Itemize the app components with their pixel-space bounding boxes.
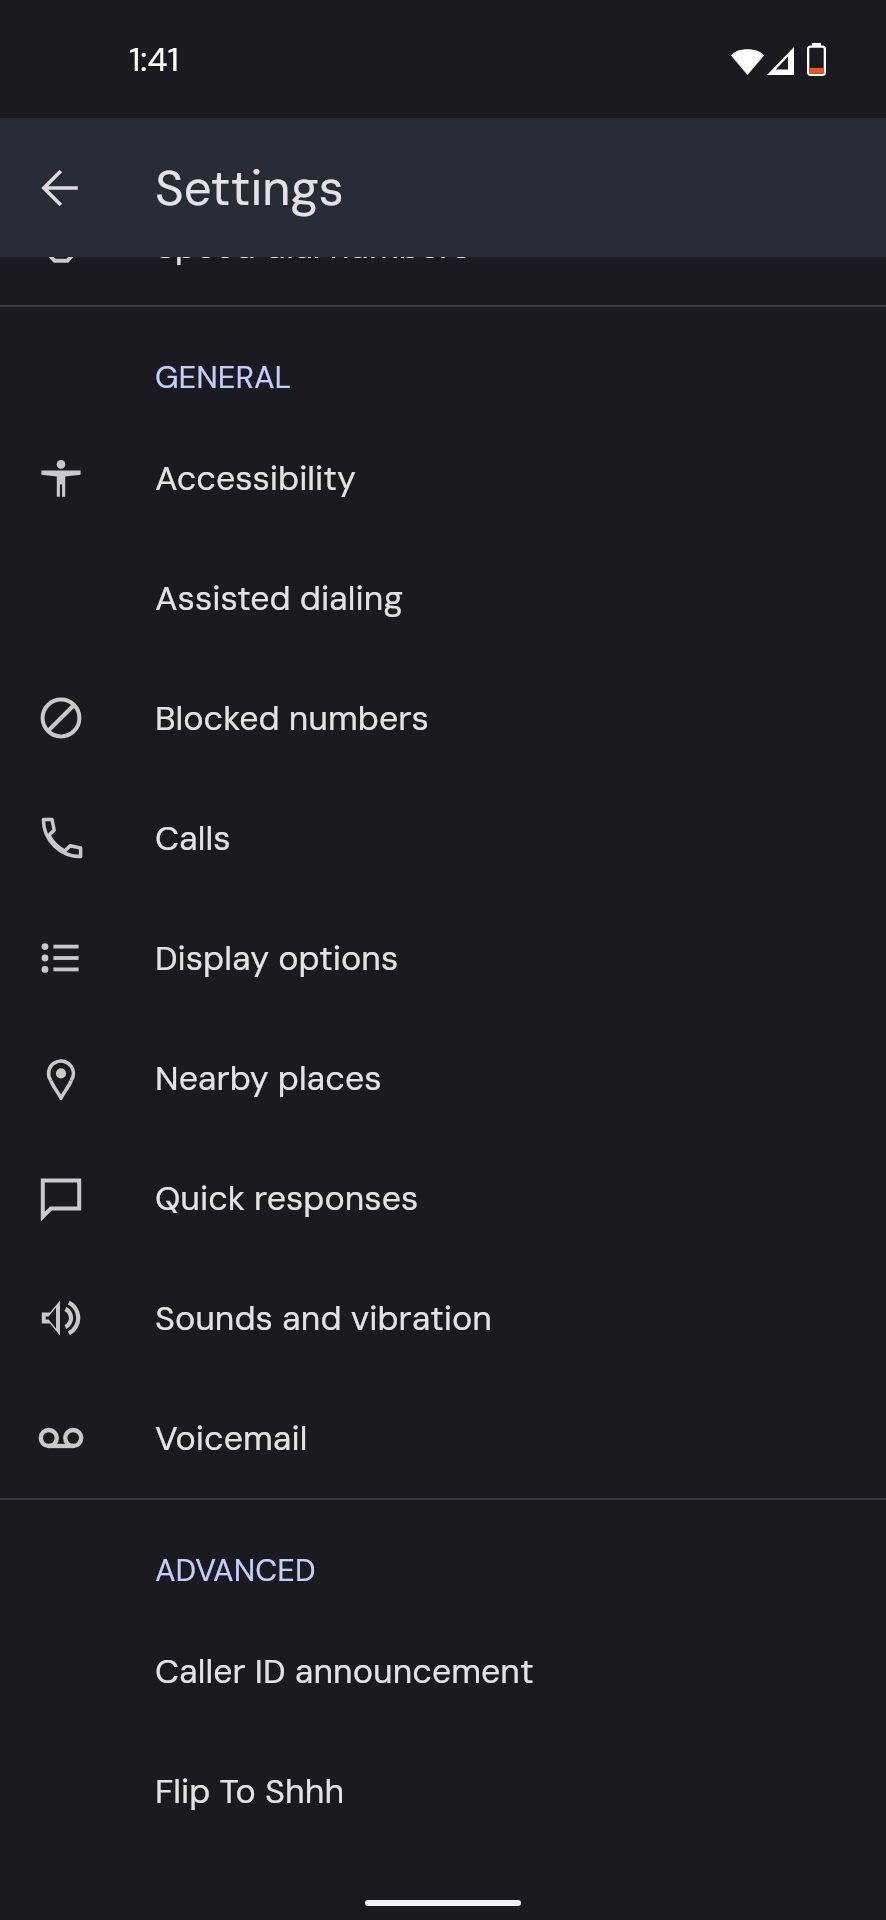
button[interactable]: Blocked numbers (0, 658, 886, 778)
staticText: Blocked numbers (155, 696, 429, 740)
staticText: Settings (155, 156, 344, 220)
staticText: Accessibility (155, 456, 356, 500)
button[interactable]: Navigate back (24, 151, 97, 224)
staticText: Voicemail (155, 1416, 308, 1460)
staticText: Caller ID announcement (155, 1649, 534, 1693)
button[interactable]: Voicemail (0, 1378, 886, 1498)
button[interactable]: Accessibility (0, 418, 886, 538)
button[interactable]: Assisted dialing (0, 538, 886, 658)
button[interactable]: Quick responses (0, 1138, 886, 1258)
button[interactable]: Sounds and vibration (0, 1258, 886, 1378)
button[interactable]: Calls (0, 778, 886, 898)
staticText: Calls (155, 816, 231, 860)
button[interactable]: Nearby places (0, 1018, 886, 1138)
staticText: ADVANCED (155, 1550, 316, 1590)
staticText: 1:41 (129, 38, 179, 81)
button[interactable]: Speed dial numbers (0, 186, 886, 305)
staticText: Flip To Shhh (155, 1769, 345, 1813)
staticText: Assisted dialing (155, 576, 403, 620)
staticText: Display options (155, 936, 399, 980)
staticText: Speed dial numbers (155, 224, 470, 268)
button[interactable]: Caller ID announcement (0, 1611, 886, 1731)
button[interactable]: Display options (0, 898, 886, 1018)
staticText: GENERAL (155, 357, 292, 397)
button[interactable]: Flip To Shhh (0, 1731, 886, 1851)
staticText: Quick responses (155, 1176, 419, 1220)
staticText: Sounds and vibration (155, 1296, 493, 1340)
staticText: Nearby places (155, 1056, 382, 1100)
